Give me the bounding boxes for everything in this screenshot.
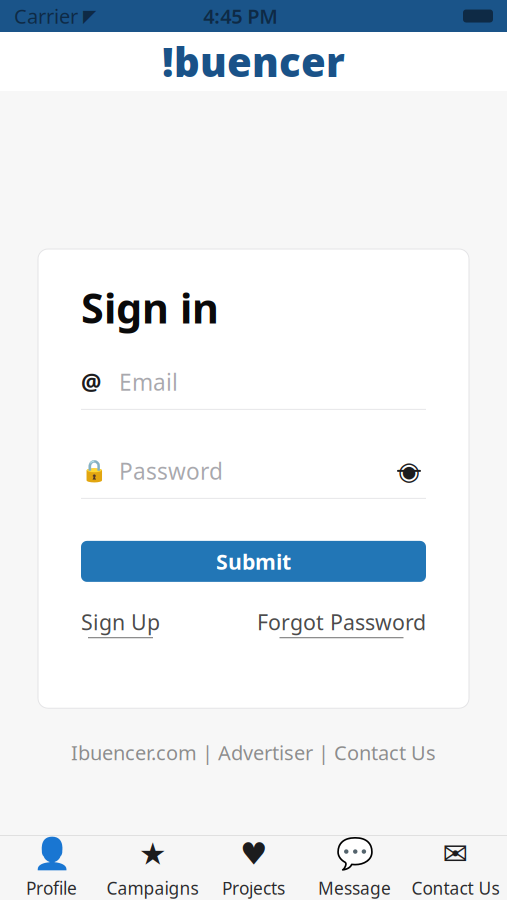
staticText: Sign in [81, 280, 219, 335]
staticText: Forgot Password [257, 608, 426, 636]
staticText: Campaigns [106, 876, 198, 899]
staticText: Carrier [14, 3, 78, 29]
staticText: 👤 [32, 836, 70, 871]
button[interactable]: 💬 [304, 836, 405, 900]
staticText: ★ [139, 837, 166, 871]
staticText: Profile [26, 876, 77, 899]
button[interactable]: 👤 [1, 836, 102, 900]
staticText: !buencer [162, 35, 345, 88]
staticText: Projects [222, 876, 285, 899]
staticText: 4:45 PM [203, 3, 278, 29]
staticText: Message [318, 876, 391, 899]
staticText: Password [119, 456, 223, 486]
staticText: ◤ [83, 6, 96, 26]
button[interactable]: Show password [392, 456, 426, 486]
button[interactable]: ★ [102, 836, 203, 900]
button[interactable]: ♥ [203, 836, 304, 900]
staticText: Sign Up [81, 608, 160, 636]
staticText: @ [81, 367, 101, 397]
button[interactable]: Forgot Password [257, 608, 426, 638]
staticText: ✉ [442, 837, 468, 871]
staticText: Submit [216, 547, 291, 575]
button[interactable]: Sign Up [81, 608, 160, 638]
button[interactable]: Submit [81, 541, 426, 582]
staticText: Contact Us [411, 876, 499, 899]
button[interactable]: ✉ [405, 836, 506, 900]
staticText: Ibuencer.com | Advertiser | Contact Us [71, 739, 436, 766]
staticText: 🔒 [81, 459, 108, 483]
staticText: ♥ [240, 837, 267, 871]
staticText: 💬 [335, 836, 373, 871]
staticText: ◉ [398, 456, 420, 485]
staticText: Email [119, 367, 178, 397]
